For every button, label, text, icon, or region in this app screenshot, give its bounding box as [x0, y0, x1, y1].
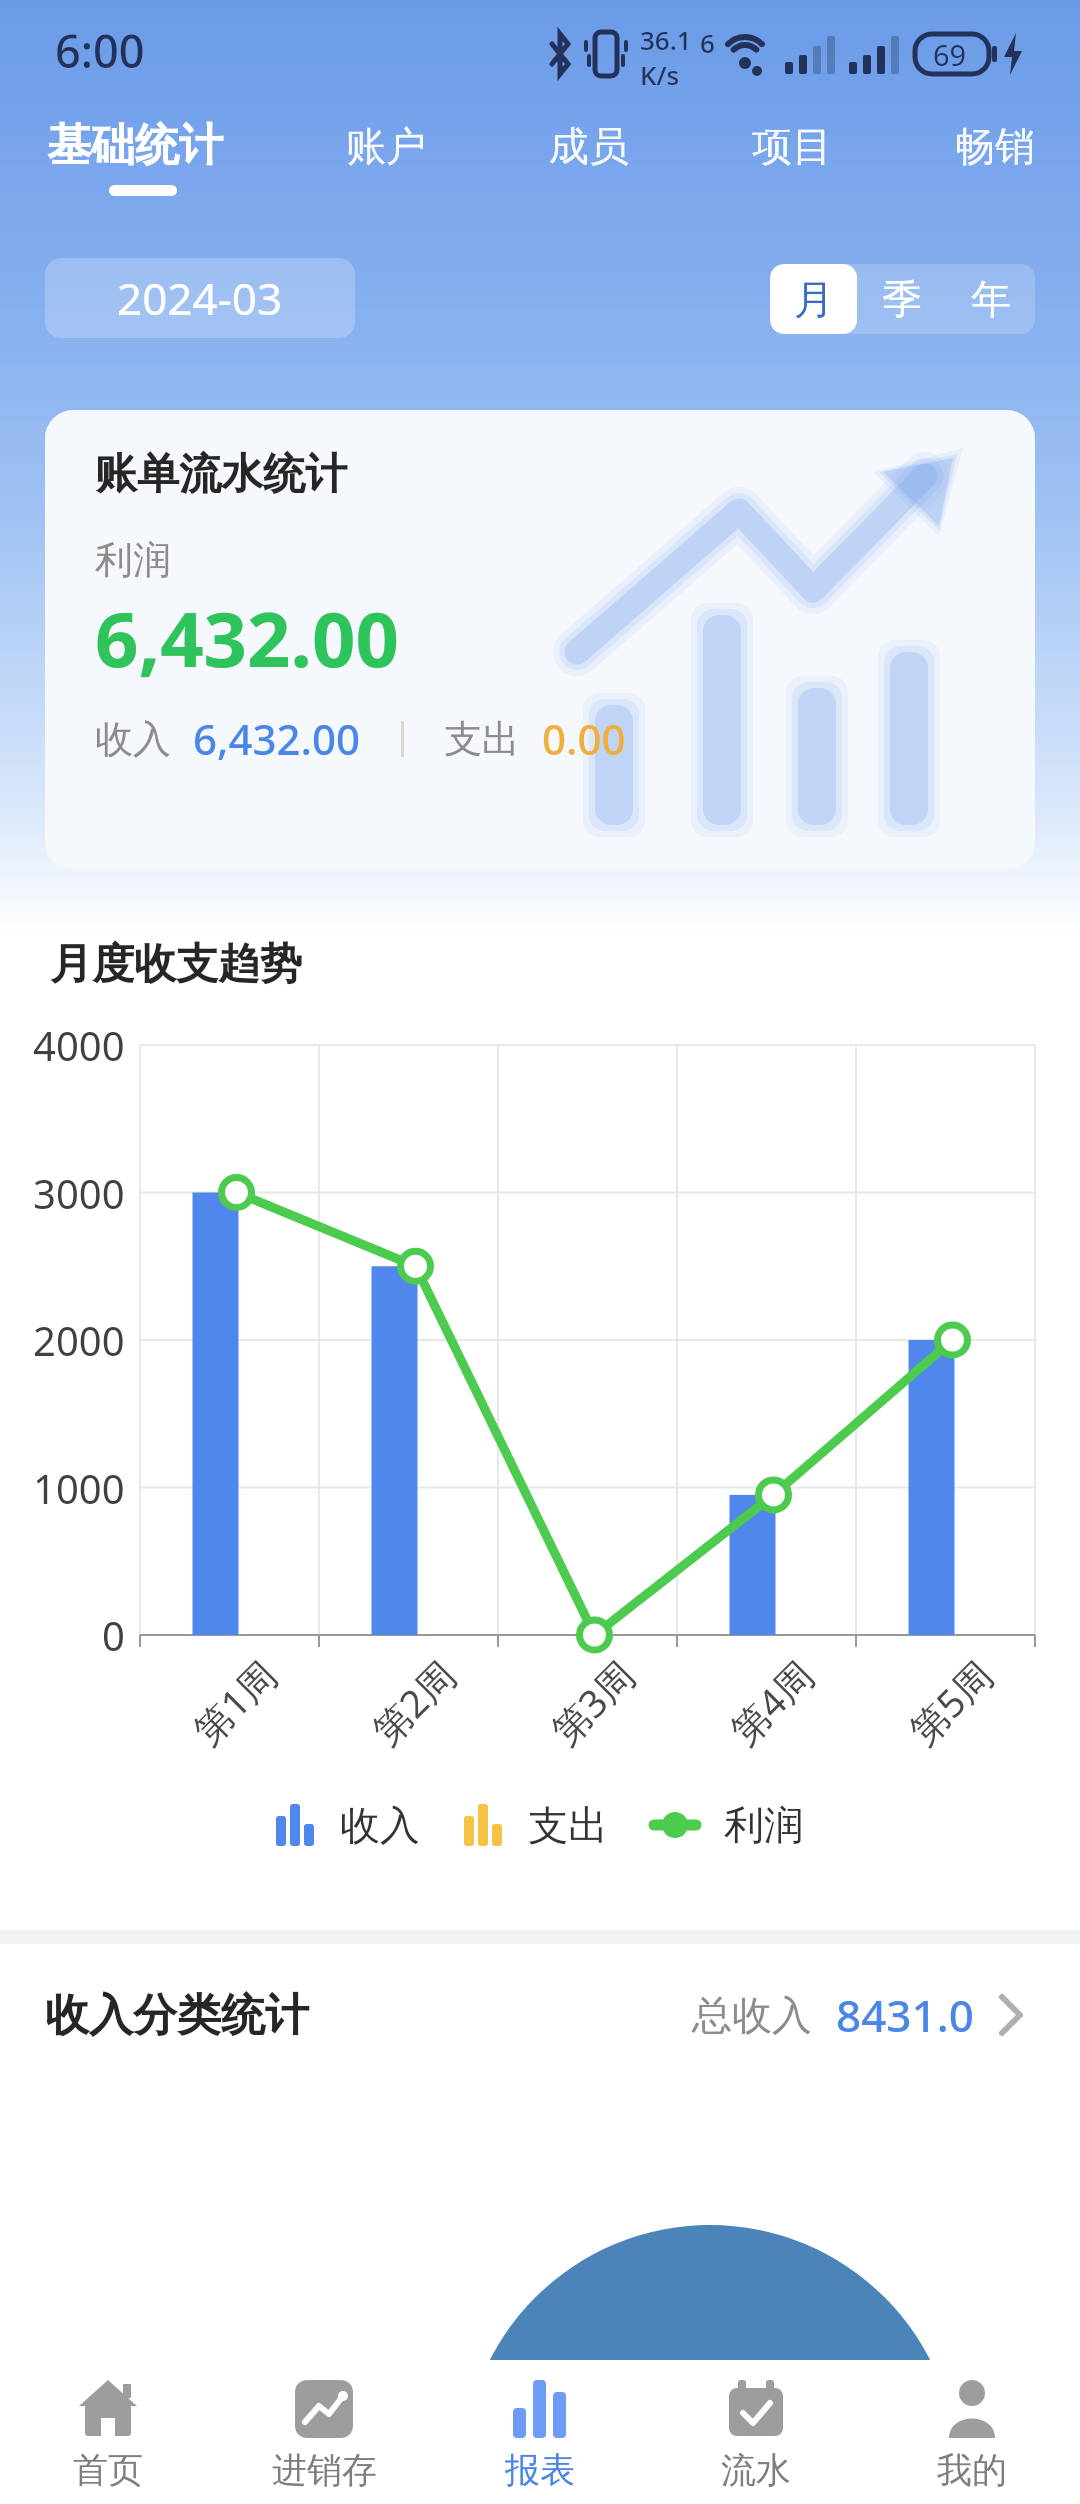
staticText: 收入	[340, 1800, 420, 1850]
button[interactable]: 季	[857, 264, 946, 334]
button[interactable]: 我的	[864, 2360, 1080, 2504]
staticText: 月度收支趋势	[50, 938, 302, 991]
staticText: 69	[933, 35, 967, 74]
button[interactable]: 收入分类统计	[45, 1975, 1022, 2055]
staticText: 季	[882, 274, 922, 324]
button[interactable]: 成员	[549, 121, 629, 171]
staticText: 总收入	[692, 1990, 812, 2040]
staticText: 收入分类统计	[45, 1988, 309, 2043]
button[interactable]: 2024-03	[45, 258, 355, 338]
staticText: 我的	[937, 2448, 1007, 2492]
button[interactable]: 基础统计	[47, 118, 223, 196]
staticText: 流水	[721, 2448, 791, 2492]
button[interactable]: 项目	[752, 121, 832, 171]
button[interactable]: 流水	[648, 2360, 864, 2504]
button[interactable]: 报表	[432, 2360, 648, 2504]
staticText: 月	[794, 274, 834, 324]
button[interactable]: 年	[946, 264, 1035, 334]
button[interactable]: 畅销	[955, 121, 1035, 171]
staticText: 6,432.00	[95, 586, 399, 690]
staticText: 6	[700, 25, 715, 60]
staticText: 8431.0	[836, 1985, 974, 2045]
staticText: 2024-03	[117, 268, 283, 328]
staticText: 支出	[444, 715, 520, 763]
staticText: 收入	[95, 715, 171, 763]
staticText: 报表	[505, 2448, 575, 2492]
staticText: 进销存	[272, 2448, 377, 2492]
staticText: 利润	[724, 1800, 804, 1850]
staticText: 6,432.00	[193, 710, 361, 767]
button[interactable]: 账户	[346, 121, 426, 171]
staticText: 基础统计	[47, 118, 223, 173]
staticText: 支出	[528, 1800, 608, 1850]
staticText: 账单流水统计	[95, 448, 347, 501]
staticText: 利润	[95, 536, 171, 584]
staticText: 36.1	[640, 22, 692, 57]
button[interactable]: 首页	[0, 2360, 216, 2504]
staticText: K/s	[640, 57, 680, 86]
staticText: 0.00	[542, 710, 626, 767]
button[interactable]: 月	[770, 264, 857, 334]
staticText: 6:00	[55, 20, 145, 81]
staticText: 首页	[73, 2448, 143, 2492]
staticText: 年	[971, 274, 1011, 324]
button[interactable]: 进销存	[216, 2360, 432, 2504]
